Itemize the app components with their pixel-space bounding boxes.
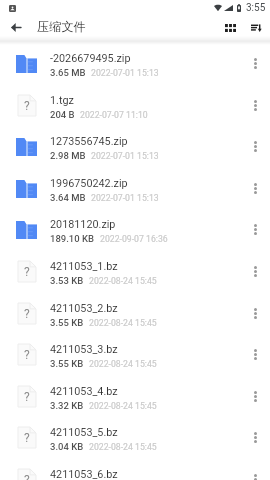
staticText: 4211053_4.bz bbox=[50, 385, 118, 398]
staticText: 3.55 KB bbox=[50, 358, 84, 369]
button[interactable]: More options bbox=[242, 211, 268, 252]
staticText: ? bbox=[24, 307, 30, 321]
staticText: 2022-08-24 15:45 bbox=[89, 401, 157, 411]
staticText: ? bbox=[24, 265, 30, 279]
staticText: 2022-07-01 15:13 bbox=[91, 193, 159, 203]
staticText: 3.04 KB bbox=[50, 441, 84, 452]
staticText: 2022-08-24 15:45 bbox=[89, 276, 157, 286]
staticText: 1996750242.zip bbox=[50, 177, 128, 190]
button[interactable]: ? bbox=[0, 86, 270, 128]
staticText: 2022-08-24 15:45 bbox=[89, 318, 157, 328]
button[interactable]: ? bbox=[0, 335, 270, 377]
button[interactable]: More options bbox=[242, 45, 268, 86]
button[interactable]: 1996750242.zip bbox=[0, 169, 270, 211]
staticText: 2022-07-07 11:10 bbox=[80, 110, 148, 120]
staticText: 1273556745.zip bbox=[50, 135, 128, 148]
staticText: 204 B bbox=[50, 109, 75, 120]
staticText: 3.64 MB bbox=[50, 192, 86, 203]
staticText: 3.55 KB bbox=[50, 317, 84, 328]
staticText: ? bbox=[24, 99, 30, 113]
staticText: 1.tgz bbox=[50, 94, 74, 107]
button[interactable]: ? bbox=[0, 252, 270, 294]
button[interactable]: More options bbox=[242, 461, 268, 480]
button[interactable]: 1273556745.zip bbox=[0, 127, 270, 169]
staticText: ? bbox=[24, 348, 30, 362]
staticText: 20181120.zip bbox=[50, 218, 116, 231]
staticText: 2022-09-07 16:36 bbox=[100, 234, 168, 244]
button[interactable]: ? bbox=[0, 418, 270, 460]
button[interactable]: Grid view bbox=[218, 16, 243, 40]
button[interactable]: -2026679495.zip bbox=[0, 44, 270, 86]
staticText: 4211053_3.bz bbox=[50, 343, 118, 356]
button[interactable]: ? bbox=[0, 294, 270, 336]
staticText: 189.10 KB bbox=[50, 233, 95, 244]
staticText: 2022-07-01 15:13 bbox=[91, 151, 159, 161]
button[interactable]: 20181120.zip bbox=[0, 210, 270, 252]
button[interactable]: More options bbox=[242, 378, 268, 419]
button[interactable]: More options bbox=[242, 419, 268, 460]
staticText: ? bbox=[24, 431, 30, 445]
staticText: 2022-08-24 15:45 bbox=[89, 442, 157, 452]
button[interactable]: Sort bbox=[245, 16, 267, 40]
button[interactable]: Back bbox=[0, 16, 32, 40]
button[interactable]: More options bbox=[242, 128, 268, 169]
staticText: 2022-07-01 15:13 bbox=[91, 68, 159, 78]
button[interactable]: More options bbox=[242, 295, 268, 336]
button[interactable]: ? bbox=[0, 460, 270, 480]
button[interactable]: More options bbox=[242, 253, 268, 294]
staticText: 3.53 KB bbox=[50, 275, 84, 286]
button[interactable]: More options bbox=[242, 336, 268, 377]
staticText: ? bbox=[24, 473, 30, 480]
staticText: -2026679495.zip bbox=[50, 52, 131, 65]
staticText: 3:55 bbox=[246, 2, 266, 14]
staticText: 3.65 MB bbox=[50, 67, 86, 78]
staticText: 4211053_5.bz bbox=[50, 426, 118, 439]
button[interactable]: More options bbox=[242, 87, 268, 128]
staticText: 4211053_1.bz bbox=[50, 260, 118, 273]
staticText: 4211053_2.bz bbox=[50, 302, 118, 315]
staticText: 2022-08-24 15:45 bbox=[89, 359, 157, 369]
staticText: 压缩文件 bbox=[37, 19, 86, 34]
staticText: ? bbox=[24, 390, 30, 404]
button[interactable]: ? bbox=[0, 377, 270, 419]
staticText: 3.32 KB bbox=[50, 400, 84, 411]
button[interactable]: More options bbox=[242, 170, 268, 211]
staticText: 2.98 MB bbox=[50, 150, 86, 161]
staticText: 4211053_6.bz bbox=[50, 468, 118, 480]
